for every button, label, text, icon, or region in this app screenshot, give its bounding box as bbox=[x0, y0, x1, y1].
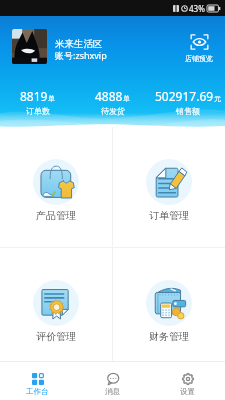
button[interactable]: 订单管理 bbox=[113, 127, 225, 247]
staticText: 502917.69 bbox=[155, 88, 214, 104]
staticText: 销售额 bbox=[176, 106, 200, 116]
staticText: 单 bbox=[48, 94, 55, 103]
button[interactable]: 设置 bbox=[150, 362, 225, 400]
staticText: 店铺预览 bbox=[185, 54, 213, 63]
staticText: 消息 bbox=[105, 387, 120, 396]
staticText: 单 bbox=[123, 94, 130, 103]
button[interactable]: 评价管理 bbox=[0, 248, 112, 361]
staticText: 待发货 bbox=[101, 106, 125, 116]
staticText: 订单数 bbox=[26, 106, 50, 116]
staticText: 元 bbox=[214, 94, 221, 103]
staticText: 财务管理 bbox=[149, 330, 189, 343]
button[interactable]: 消息 bbox=[75, 362, 150, 400]
button[interactable]: 店铺预览 bbox=[182, 32, 216, 65]
staticText: 账号:zshxvip bbox=[55, 49, 107, 61]
button[interactable]: 财务管理 bbox=[113, 248, 225, 361]
staticText: 43% bbox=[189, 3, 205, 14]
staticText: 工作台 bbox=[26, 387, 49, 396]
button[interactable]: 工作台 bbox=[0, 362, 75, 400]
staticText: 订单管理 bbox=[149, 209, 189, 222]
staticText: 米来生活区 bbox=[55, 38, 103, 50]
button[interactable]: 产品管理 bbox=[0, 127, 112, 247]
staticText: 评价管理 bbox=[36, 330, 76, 343]
staticText: 8819 bbox=[20, 88, 48, 104]
staticText: 产品管理 bbox=[36, 209, 76, 222]
staticText: 设置 bbox=[180, 387, 195, 396]
staticText: 4888 bbox=[95, 88, 123, 104]
